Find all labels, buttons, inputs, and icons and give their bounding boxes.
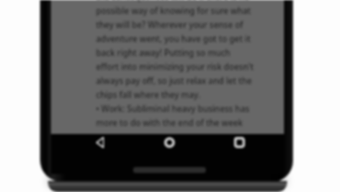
button[interactable]: Home	[158, 131, 180, 153]
staticText: the consequences will be if there is no …	[96, 0, 254, 129]
button[interactable]: Back	[89, 131, 111, 153]
button[interactable]: Recent apps	[228, 131, 250, 153]
